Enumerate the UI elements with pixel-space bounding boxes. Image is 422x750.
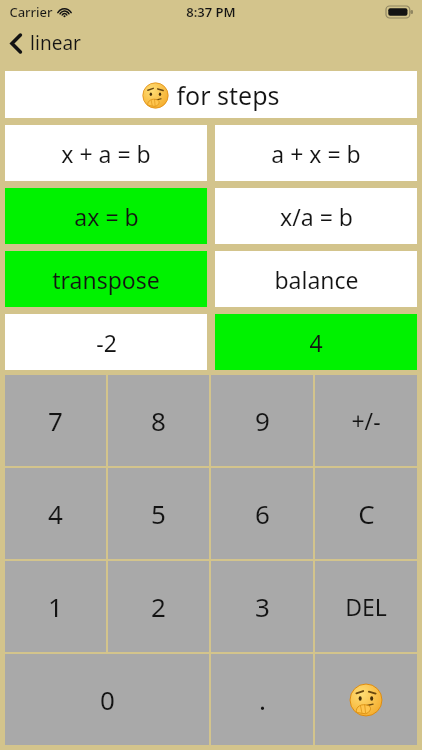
- button[interactable]: 5: [108, 468, 209, 559]
- staticText: balance: [274, 264, 359, 295]
- button[interactable]: C: [315, 468, 417, 559]
- staticText: 8: [151, 403, 166, 438]
- staticText: transpose: [52, 264, 160, 295]
- button[interactable]: a + x = b: [215, 125, 417, 181]
- staticText: -2: [96, 327, 117, 358]
- staticText: 7: [48, 403, 63, 438]
- staticText: 1: [48, 589, 63, 624]
- staticText: ax = b: [74, 201, 139, 232]
- staticText: 0: [100, 682, 115, 717]
- staticText: for steps: [176, 78, 280, 112]
- button[interactable]: 0: [5, 654, 209, 745]
- staticText: Carrier: [9, 3, 53, 21]
- staticText: 2: [151, 589, 166, 624]
- staticText: DEL: [345, 591, 387, 622]
- staticText: 4: [309, 327, 323, 358]
- button[interactable]: -2: [5, 314, 207, 370]
- staticText: 3: [255, 589, 270, 624]
- button[interactable]: 2: [108, 561, 209, 652]
- staticText: 8:37 PM: [186, 3, 236, 21]
- staticText: 9: [255, 403, 270, 438]
- staticText: +/-: [351, 405, 381, 436]
- button[interactable]: 8: [108, 375, 209, 466]
- staticText: x/a = b: [280, 201, 353, 232]
- button[interactable]: 4: [5, 468, 106, 559]
- staticText: a + x = b: [271, 138, 361, 169]
- staticText: C: [358, 496, 375, 531]
- button[interactable]: 9: [211, 375, 313, 466]
- button[interactable]: 7: [5, 375, 106, 466]
- staticText: .: [259, 682, 266, 717]
- button[interactable]: .: [211, 654, 313, 745]
- button[interactable]: 1: [5, 561, 106, 652]
- button[interactable]: ax = b: [5, 188, 207, 244]
- button[interactable]: for steps: [5, 71, 417, 118]
- staticText: 5: [151, 496, 166, 531]
- staticText: x + a = b: [61, 138, 151, 169]
- staticText: 4: [48, 496, 63, 531]
- button[interactable]: 6: [211, 468, 313, 559]
- button[interactable]: Show steps: [315, 654, 417, 745]
- staticText: linear: [30, 30, 81, 56]
- button[interactable]: +/-: [315, 375, 417, 466]
- button[interactable]: DEL: [315, 561, 417, 652]
- button[interactable]: x + a = b: [5, 125, 207, 181]
- button[interactable]: 3: [211, 561, 313, 652]
- button[interactable]: 4: [215, 314, 417, 370]
- button[interactable]: balance: [215, 251, 417, 307]
- button[interactable]: linear: [0, 24, 422, 62]
- button[interactable]: transpose: [5, 251, 207, 307]
- button[interactable]: x/a = b: [215, 188, 417, 244]
- staticText: 6: [255, 496, 270, 531]
